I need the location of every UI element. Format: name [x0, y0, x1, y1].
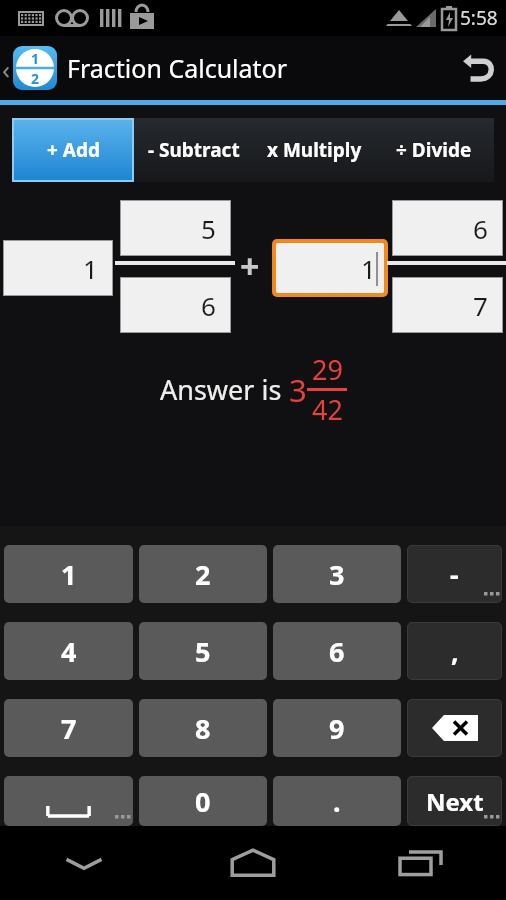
button[interactable]: ÷ Divide	[374, 118, 494, 182]
staticText: ,	[451, 633, 459, 670]
button[interactable]: 7	[4, 699, 133, 757]
button[interactable]: Next	[407, 776, 502, 826]
staticText: Next	[426, 785, 484, 818]
staticText: 1	[61, 556, 77, 593]
staticText: 2	[31, 69, 40, 87]
staticText: 29	[312, 351, 343, 388]
staticText: 3	[289, 369, 307, 411]
staticText: 8	[195, 710, 211, 747]
button[interactable]: Undo	[450, 40, 506, 96]
staticText: ÷ Divide	[396, 137, 472, 163]
staticText: - Subtract	[148, 137, 240, 163]
button[interactable]: Recent apps	[337, 826, 506, 900]
staticText: 1	[83, 251, 98, 286]
staticText: 1	[361, 251, 376, 286]
button[interactable]: 8	[139, 699, 267, 757]
button[interactable]: x Multiply	[254, 118, 374, 182]
button[interactable]: 6	[273, 622, 401, 680]
button[interactable]: .	[273, 776, 401, 826]
staticText: 9	[329, 710, 345, 747]
button[interactable]: 2	[139, 545, 267, 603]
button[interactable]: 5	[139, 622, 267, 680]
button[interactable]: 1	[4, 241, 112, 295]
staticText: 5	[195, 633, 211, 670]
button[interactable]: 0	[139, 776, 267, 826]
staticText: 5	[201, 211, 216, 246]
button[interactable]: Hide keyboard	[0, 826, 168, 900]
staticText: 3	[329, 556, 345, 593]
button[interactable]: Delete	[407, 699, 502, 757]
button[interactable]: + Add	[12, 118, 134, 182]
button[interactable]: 5	[121, 201, 230, 255]
button[interactable]: 4	[4, 622, 133, 680]
staticText: x Multiply	[267, 137, 362, 163]
button[interactable]: - Subtract	[134, 118, 254, 182]
staticText: Answer is	[160, 371, 289, 408]
staticText: .	[333, 783, 341, 820]
staticText: 4	[61, 633, 77, 670]
button[interactable]: Space	[4, 776, 133, 826]
button[interactable]: 9	[273, 699, 401, 757]
staticText: 7	[61, 710, 77, 747]
staticText: 6	[201, 288, 216, 323]
staticText: 0	[195, 783, 211, 820]
staticText: 5:58	[460, 5, 498, 31]
staticText: -	[450, 556, 459, 593]
staticText: 6	[329, 633, 345, 670]
staticText: ‹	[2, 51, 11, 86]
staticText: + Add	[47, 137, 100, 163]
button[interactable]: ,	[407, 622, 502, 680]
staticText: 42	[312, 391, 343, 428]
staticText: +	[240, 243, 260, 289]
button[interactable]: -	[407, 545, 502, 603]
button[interactable]: 1	[276, 243, 384, 293]
button[interactable]: 1	[4, 545, 133, 603]
button[interactable]: 3	[273, 545, 401, 603]
button[interactable]: 6	[121, 278, 230, 332]
button[interactable]: Home	[168, 826, 337, 900]
staticText: 6	[473, 211, 488, 246]
staticText: 7	[473, 288, 488, 323]
staticText: 2	[195, 556, 211, 593]
button[interactable]: 7	[393, 278, 502, 332]
staticText: 1	[31, 49, 40, 68]
staticText: Fraction Calculator	[67, 51, 288, 85]
button[interactable]: 6	[393, 201, 502, 255]
